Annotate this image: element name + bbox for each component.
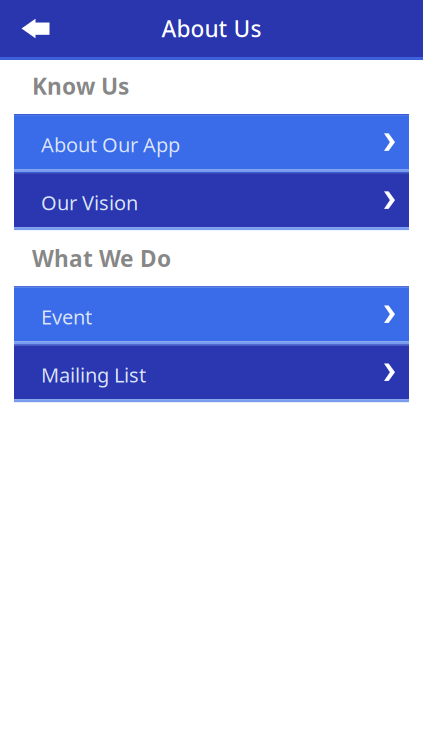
button[interactable]: Event [14, 286, 409, 344]
button[interactable]: Back [0, 1, 63, 56]
staticText: Mailing List [41, 361, 146, 388]
button[interactable]: About Our App [14, 114, 409, 172]
staticText: Event [41, 303, 92, 330]
staticText: About Our App [41, 131, 180, 158]
button[interactable]: Mailing List [14, 344, 409, 402]
staticText: What We Do [32, 243, 171, 273]
staticText: Know Us [32, 71, 129, 101]
button[interactable]: Our Vision [14, 172, 409, 230]
staticText: About Us [161, 13, 261, 43]
staticText: Our Vision [41, 189, 138, 216]
